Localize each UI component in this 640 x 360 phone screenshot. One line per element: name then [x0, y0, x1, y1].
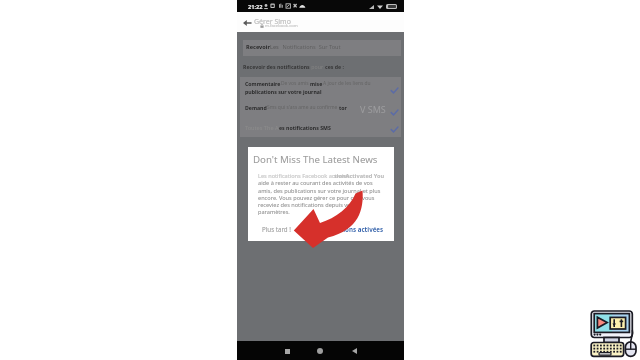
staticText: Notifications activées: [316, 225, 384, 233]
button[interactable]: Notifications activées: [311, 222, 389, 236]
staticText: Recevoir: [246, 43, 270, 51]
staticText: es notifications SMS: [279, 124, 331, 131]
staticText: Gérer Simo: [254, 17, 291, 27]
button[interactable]: Video computer: [588, 308, 638, 358]
staticText: Les: [270, 43, 281, 51]
staticText: Toutes The A: [245, 124, 279, 132]
staticText: Recevoir des notifications: [243, 63, 310, 70]
button[interactable]: Back: [241, 17, 252, 28]
staticText: 21:22: [248, 3, 263, 11]
staticText: mise: [310, 80, 323, 87]
button[interactable]: Commentaire: [240, 77, 401, 99]
staticText: Plus tard !: [262, 225, 291, 233]
staticText: aide à rester au courant des activités d…: [258, 179, 381, 216]
staticText: Demand: [245, 104, 267, 111]
staticText: ces de :: [325, 63, 344, 70]
button[interactable]: Recevoir: [243, 40, 401, 56]
staticText: Commentaire: [245, 80, 281, 87]
staticText: publications sur votre journal: [245, 88, 322, 95]
button[interactable]: Plus tard !: [256, 222, 297, 236]
staticText: V SMS: [360, 103, 386, 115]
staticText: Notifications Sur Tout: [281, 43, 341, 51]
staticText: m.facebook.com: [265, 23, 298, 29]
staticText: Sms qui s'ara ame au confirme: [267, 104, 339, 111]
button[interactable]: Back: [346, 343, 362, 359]
button[interactable]: Recent apps: [279, 343, 295, 359]
staticText: De vos amis: [281, 80, 310, 87]
button[interactable]: Demand: [240, 99, 401, 118]
staticText: Don't Miss The Latest News: [253, 153, 378, 166]
staticText: A jour de les liens du: [323, 80, 371, 87]
button[interactable]: Toutes The A: [240, 118, 401, 137]
staticText: sionActivated You: [334, 172, 385, 180]
staticText: Les notifications Facebook activées: [258, 172, 350, 180]
button[interactable]: Home: [312, 343, 328, 359]
staticText: pour: [310, 63, 325, 70]
staticText: tor: [339, 104, 347, 111]
